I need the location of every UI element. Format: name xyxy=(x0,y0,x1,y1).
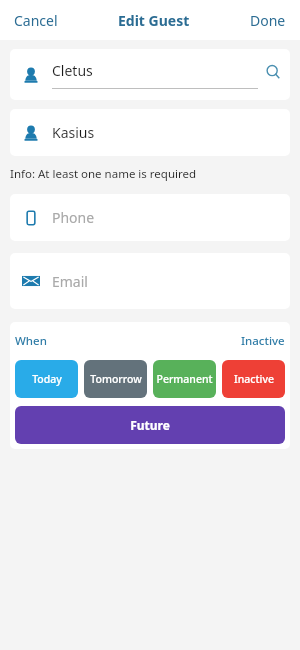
staticText: Kasius xyxy=(52,123,95,142)
staticText: Inactive xyxy=(234,372,274,386)
button[interactable]: Inactive xyxy=(222,360,285,398)
button[interactable]: Permanent xyxy=(153,360,216,398)
staticText: Cancel xyxy=(14,11,58,30)
button[interactable]: Cancel xyxy=(0,3,72,38)
staticText: Phone xyxy=(52,208,95,227)
staticText: Today xyxy=(32,372,62,386)
button[interactable]: Today xyxy=(15,360,78,398)
staticText: Permanent xyxy=(156,372,213,386)
staticText: When xyxy=(15,333,47,349)
staticText: Edit Guest xyxy=(118,11,190,30)
staticText: Done xyxy=(250,11,286,30)
button[interactable]: Tomorrow xyxy=(84,360,147,398)
staticText: Inactive xyxy=(241,333,285,349)
staticText: Future xyxy=(130,417,170,433)
button[interactable]: Future xyxy=(15,406,285,444)
staticText: Cletus xyxy=(52,61,93,80)
staticText: Tomorrow xyxy=(90,372,142,386)
other: Search xyxy=(266,65,280,79)
staticText: Email xyxy=(52,272,88,291)
button[interactable]: Search guest xyxy=(258,59,290,91)
staticText: Info: At least one name is required xyxy=(10,166,197,182)
button[interactable]: Done xyxy=(236,3,300,38)
